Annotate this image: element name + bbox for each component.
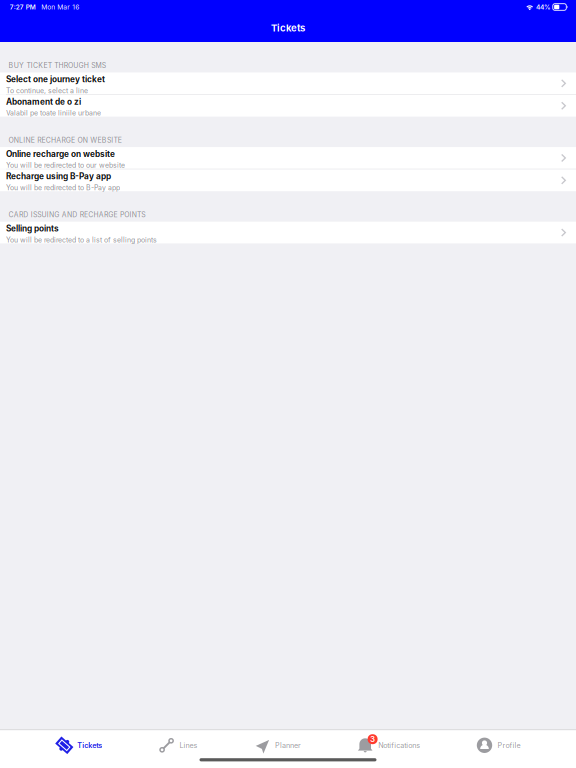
- staticText: You will be redirected to a list of sell…: [6, 236, 157, 244]
- button[interactable]: Lines: [158, 735, 198, 756]
- staticText: Tickets: [77, 741, 102, 749]
- staticText: Select one journey ticket: [6, 75, 105, 84]
- button[interactable]: Profile: [476, 735, 520, 756]
- staticText: Valabil pe toate liniile urbane: [6, 109, 101, 117]
- staticText: You will be redirected to B-Pay app: [6, 184, 120, 192]
- staticText: ONLINE RECHARGE ON WEBSITE: [9, 136, 122, 144]
- button[interactable]: Planner: [253, 735, 301, 756]
- staticText: 3: [370, 735, 375, 744]
- staticText: CARD ISSUING AND RECHARGE POINTS: [9, 211, 145, 219]
- button[interactable]: Online recharge on website: [0, 147, 576, 169]
- staticText: 44%: [536, 3, 551, 11]
- button[interactable]: 3: [356, 735, 420, 756]
- button[interactable]: Select one journey ticket: [0, 72, 576, 94]
- button[interactable]: Selling points: [0, 222, 576, 243]
- button[interactable]: Abonament de o zi: [0, 95, 576, 117]
- staticText: Online recharge on website: [6, 149, 115, 159]
- staticText: BUY TICKET THROUGH SMS: [9, 61, 106, 69]
- staticText: Lines: [180, 741, 198, 749]
- staticText: Notifications: [378, 741, 420, 749]
- staticText: Planner: [275, 741, 301, 749]
- staticText: Abonament de o zi: [6, 97, 81, 106]
- staticText: You will be redirected to our website: [6, 161, 125, 169]
- staticText: Selling points: [6, 224, 59, 233]
- staticText: To continue, select a line: [6, 87, 88, 95]
- staticText: 7:27 PM: [10, 3, 36, 11]
- staticText: Profile: [497, 741, 520, 749]
- staticText: Tickets: [271, 22, 305, 33]
- button[interactable]: Recharge using B-Pay app: [0, 169, 576, 191]
- staticText: Mon Mar 16: [41, 3, 79, 11]
- staticText: Recharge using B-Pay app: [6, 172, 111, 181]
- button[interactable]: Tickets: [55, 735, 102, 756]
